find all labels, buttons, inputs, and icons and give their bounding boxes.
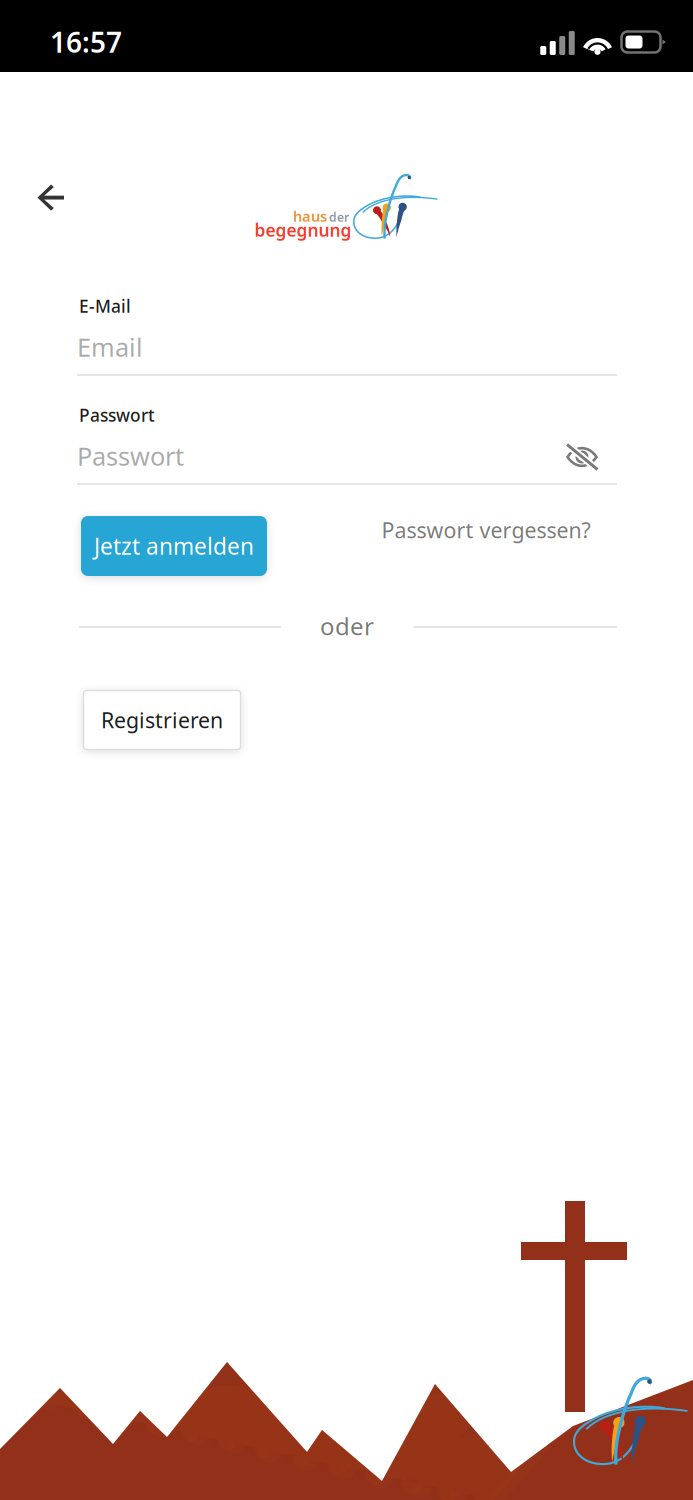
- button[interactable]: Registrieren: [83, 690, 240, 749]
- staticText: Passwort: [77, 439, 184, 473]
- staticText: 16:57: [50, 23, 122, 61]
- button[interactable]: Show password: [554, 431, 610, 483]
- staticText: haus: [293, 206, 327, 226]
- button[interactable]: Jetzt anmelden: [81, 516, 267, 576]
- staticText: oder: [320, 610, 374, 642]
- staticText: Passwort vergessen?: [381, 516, 590, 544]
- staticText: Passwort: [79, 403, 155, 426]
- staticText: Email: [77, 330, 143, 364]
- button[interactable]: Passwort vergessen?: [371, 508, 600, 552]
- button[interactable]: Passwort: [77, 429, 557, 483]
- staticText: E-Mail: [79, 294, 131, 317]
- button[interactable]: Back: [21, 168, 81, 228]
- staticText: begegnung: [254, 218, 351, 241]
- button[interactable]: Email: [77, 320, 617, 374]
- staticText: Registrieren: [101, 706, 223, 734]
- staticText: Jetzt anmelden: [94, 531, 254, 561]
- staticText: der: [329, 209, 349, 225]
